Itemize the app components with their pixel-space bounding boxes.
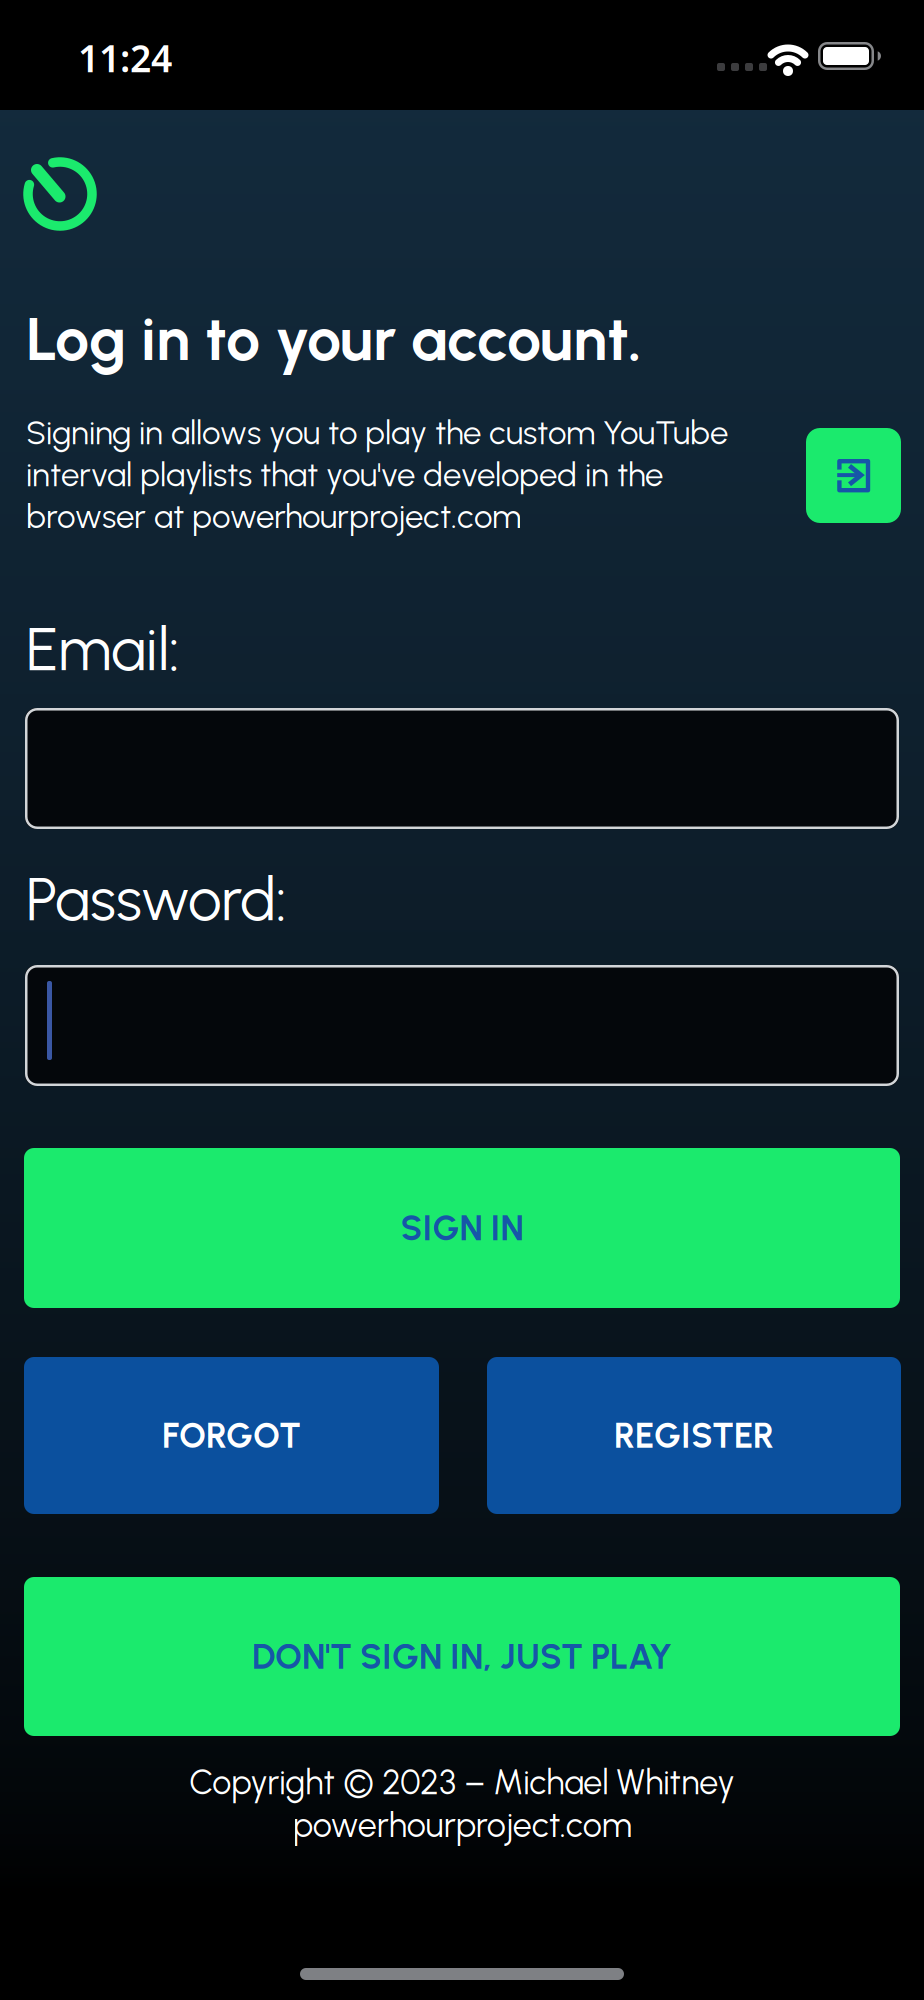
button[interactable]: FORGOT [24, 1357, 439, 1514]
button[interactable]: DON'T SIGN IN, JUST PLAY [24, 1577, 900, 1736]
staticText: DON'T SIGN IN, JUST PLAY [252, 1635, 672, 1677]
staticText: Email: [26, 613, 180, 685]
staticText: REGISTER [614, 1414, 774, 1456]
staticText: Copyright © 2023 – Michael Whitney power… [189, 1762, 735, 1846]
staticText: Log in to your account. [26, 302, 642, 375]
staticText: FORGOT [162, 1414, 301, 1456]
staticText: 11:24 [78, 33, 172, 83]
button[interactable]: Email [25, 708, 899, 829]
staticText: Signing in allows you to play the custom… [26, 413, 728, 536]
staticText: SIGN IN [400, 1207, 523, 1249]
button[interactable]: Password [25, 965, 899, 1086]
button[interactable]: SIGN IN [24, 1148, 900, 1308]
staticText: Password: [26, 863, 287, 935]
button[interactable]: Sign in [806, 428, 901, 523]
button[interactable]: REGISTER [487, 1357, 901, 1514]
